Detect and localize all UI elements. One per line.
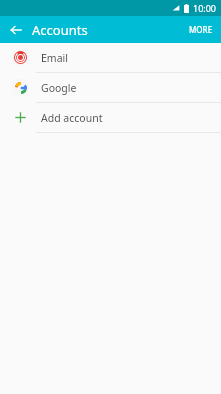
staticText: MORE <box>189 24 213 35</box>
staticText: Email <box>41 51 68 65</box>
staticText: 10:00 <box>193 2 217 14</box>
button[interactable]: Add account <box>0 103 221 132</box>
button[interactable]: Back <box>0 16 32 43</box>
button[interactable]: Google <box>0 73 221 102</box>
staticText: Accounts <box>32 21 88 39</box>
button[interactable]: Email <box>0 43 221 72</box>
staticText: Add account <box>41 111 103 125</box>
staticText: Google <box>41 81 77 95</box>
button[interactable]: MORE <box>181 16 221 43</box>
